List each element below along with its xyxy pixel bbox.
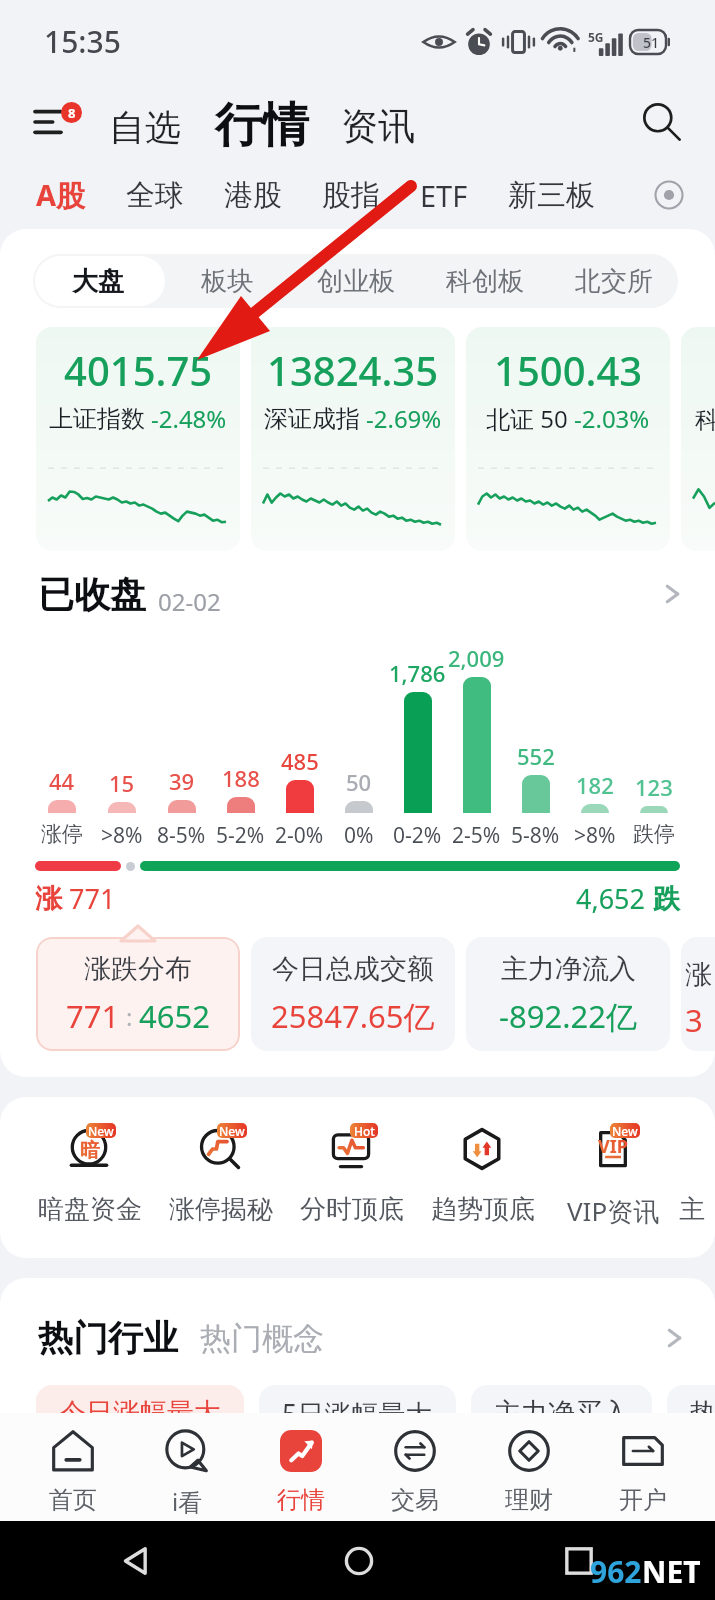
button[interactable]: 科创板: [420, 254, 549, 308]
button[interactable]: A股: [16, 165, 106, 225]
staticText: 2-5%: [452, 821, 501, 850]
staticText: 已收盘: [38, 572, 146, 617]
staticText: i看: [172, 1485, 203, 1518]
staticText: ETF: [420, 176, 468, 215]
staticText: 2,009: [448, 643, 505, 673]
staticText: 182: [576, 770, 614, 800]
staticText: 分时顶底: [300, 1193, 404, 1226]
button[interactable]: 股指: [302, 167, 400, 224]
button[interactable]: Settings: [645, 171, 693, 219]
staticText: 股指: [322, 177, 380, 214]
button[interactable]: 交易: [358, 1413, 472, 1521]
button[interactable]: 开户: [586, 1413, 700, 1521]
staticText: 涨停: [41, 821, 83, 847]
staticText: 1500.43: [494, 343, 643, 397]
button[interactable]: 趋势顶底: [417, 1097, 548, 1226]
staticText: 188: [222, 763, 260, 793]
button[interactable]: 今日总成交额: [251, 937, 455, 1051]
staticText: 2-0%: [275, 821, 324, 850]
button[interactable]: 大盘: [33, 254, 162, 308]
staticText: 今日总成交额: [272, 952, 434, 986]
staticText: 行情: [277, 1485, 325, 1515]
button[interactable]: 热: [667, 1385, 715, 1425]
button[interactable]: 行情: [244, 1413, 358, 1521]
staticText: 热: [690, 1396, 715, 1425]
button[interactable]: 板块: [162, 254, 291, 308]
button[interactable]: 已收盘: [38, 570, 685, 618]
staticText: 科创板: [446, 265, 524, 298]
button[interactable]: 今日涨幅最大: [36, 1385, 244, 1425]
staticText: 8: [68, 104, 76, 122]
staticText: Hot: [354, 1123, 375, 1138]
staticText: New: [88, 1123, 114, 1138]
staticText: 51: [643, 33, 660, 52]
button[interactable]: i看: [130, 1413, 244, 1521]
staticText: New: [219, 1123, 245, 1138]
staticText: 主力净买入: [494, 1396, 629, 1425]
button[interactable]: VIP: [548, 1097, 679, 1229]
staticText: A股: [36, 175, 86, 215]
staticText: 涨: [685, 958, 712, 992]
staticText: -2.69%: [366, 402, 442, 435]
button[interactable]: 1500.43: [466, 327, 670, 551]
staticText: 全球: [126, 177, 184, 214]
button[interactable]: ETF: [400, 166, 488, 225]
button[interactable]: 北交所: [549, 254, 678, 308]
button[interactable]: 理财: [472, 1413, 586, 1521]
button[interactable]: Search: [635, 95, 689, 149]
staticText: 主力净流入: [501, 952, 636, 986]
staticText: 资讯: [341, 103, 415, 150]
button[interactable]: 涨跌分布: [36, 937, 240, 1051]
button[interactable]: 主力净流入: [466, 937, 670, 1051]
staticText: 主: [679, 1193, 705, 1226]
button[interactable]: 13824.35: [251, 327, 455, 551]
staticText: 5日涨幅最大: [282, 1395, 433, 1425]
button[interactable]: 5日涨幅最大: [259, 1385, 456, 1425]
button[interactable]: 暗: [24, 1097, 155, 1226]
button[interactable]: 4015.75: [36, 327, 240, 551]
staticText: 大盘: [72, 265, 124, 298]
staticText: 理财: [505, 1485, 553, 1515]
staticText: 4015.75: [64, 343, 213, 397]
staticText: 新三板: [508, 177, 595, 214]
button[interactable]: 自选: [106, 99, 184, 156]
staticText: 涨跌分布: [84, 952, 192, 986]
button[interactable]: 全球: [106, 167, 204, 224]
staticText: 15:35: [44, 21, 121, 62]
staticText: -892.22亿: [499, 995, 637, 1037]
button[interactable]: 行情: [212, 95, 312, 156]
staticText: 深证成指: [264, 404, 360, 434]
button[interactable]: 首页: [15, 1413, 130, 1521]
staticText: 4,652: [576, 880, 646, 917]
staticText: 热门概念: [200, 1319, 324, 1358]
button[interactable]: Hot: [286, 1097, 417, 1226]
staticText: 今日涨幅最大: [59, 1396, 221, 1425]
staticText: 0%: [344, 821, 374, 850]
staticText: 962: [590, 1551, 642, 1592]
staticText: 行情: [215, 96, 309, 155]
button[interactable]: 资讯: [338, 97, 418, 156]
staticText: 485: [281, 746, 319, 776]
button[interactable]: 新三板: [488, 167, 615, 224]
staticText: 交易: [391, 1485, 439, 1515]
staticText: 771: [69, 880, 116, 917]
staticText: 跌停: [633, 821, 675, 847]
staticText: 5-2%: [216, 821, 265, 850]
staticText: 44: [49, 766, 75, 796]
staticText: 开户: [619, 1485, 667, 1515]
button[interactable]: 港股: [204, 167, 302, 224]
button[interactable]: 创业板: [291, 254, 420, 308]
staticText: 北证 50: [486, 402, 568, 435]
staticText: >8%: [574, 821, 616, 850]
staticText: 港股: [224, 177, 282, 214]
staticText: 3: [685, 999, 703, 1041]
staticText: 暗: [80, 1138, 100, 1163]
staticText: 涨: [35, 882, 62, 916]
staticText: 首页: [49, 1485, 97, 1515]
staticText: VIP资讯: [567, 1193, 660, 1229]
staticText: 跌: [653, 882, 680, 916]
button[interactable]: Menu: [26, 97, 84, 147]
staticText: 123: [635, 772, 673, 802]
button[interactable]: 主力净买入: [471, 1385, 652, 1425]
button[interactable]: New: [155, 1097, 286, 1226]
